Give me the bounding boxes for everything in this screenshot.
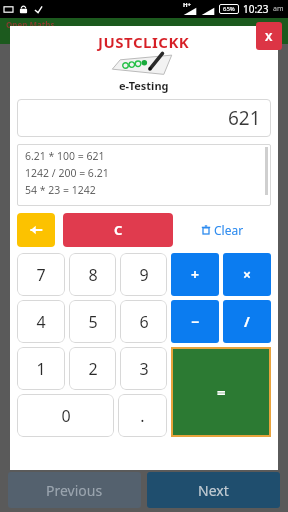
staticText: 4 xyxy=(36,311,46,333)
button[interactable]: 8 xyxy=(69,253,116,296)
button[interactable]: 2 xyxy=(69,347,116,390)
staticText: Next xyxy=(198,481,229,500)
button[interactable]: 7 xyxy=(17,253,65,296)
button[interactable]: 4 xyxy=(17,300,65,343)
button[interactable]: . xyxy=(118,394,167,437)
button[interactable]: 3 xyxy=(120,347,167,390)
staticText: 3 xyxy=(139,358,149,380)
staticText: 2 xyxy=(88,358,98,380)
staticText: 10:23 xyxy=(243,2,269,16)
staticText: × xyxy=(243,265,252,284)
staticText: 621 xyxy=(228,105,261,131)
button[interactable]: 1 xyxy=(17,347,65,390)
staticText: 0 xyxy=(61,405,71,427)
button[interactable]: 9 xyxy=(120,253,167,296)
button[interactable]: 621 xyxy=(17,99,271,137)
staticText: Open Maths xyxy=(6,19,55,30)
staticText: = xyxy=(217,382,226,402)
staticText: 9 xyxy=(139,264,149,286)
staticText: − xyxy=(191,312,200,331)
button[interactable]: Equals xyxy=(173,349,269,435)
staticText: 65% xyxy=(223,5,235,13)
button[interactable]: Backspace xyxy=(17,213,55,247)
staticText: 6 xyxy=(139,311,149,333)
button[interactable]: Clear xyxy=(174,213,271,247)
staticText: 7 xyxy=(36,264,46,286)
staticText: 5 xyxy=(88,311,98,333)
button[interactable]: 0 xyxy=(17,394,114,437)
staticText: . xyxy=(140,405,145,427)
staticText: Previous xyxy=(46,481,103,500)
button[interactable]: × xyxy=(223,253,271,296)
staticText: e-Testing xyxy=(119,78,169,93)
staticText: 54 * 23 = 1242 xyxy=(25,183,96,197)
staticText: H+ xyxy=(183,1,192,9)
button[interactable]: − xyxy=(171,300,219,343)
button[interactable]: / xyxy=(223,300,271,343)
staticText: X xyxy=(265,29,273,44)
staticText: JUSTCLICKK xyxy=(98,32,190,52)
button[interactable]: Previous xyxy=(8,472,141,508)
staticText: + xyxy=(191,265,200,284)
button[interactable]: C xyxy=(63,213,173,247)
button[interactable]: + xyxy=(171,253,219,296)
staticText: 1 xyxy=(36,358,46,380)
staticText: am xyxy=(273,4,284,14)
button[interactable]: 6 xyxy=(120,300,167,343)
staticText: C xyxy=(114,221,123,239)
staticText: / xyxy=(244,312,250,331)
staticText: 1242 / 200 = 6.21 xyxy=(25,166,109,180)
button[interactable]: Close xyxy=(256,22,282,50)
staticText: 6.21 * 100 = 621 xyxy=(25,149,105,163)
staticText: 8 xyxy=(88,264,98,286)
button[interactable]: 5 xyxy=(69,300,116,343)
staticText: Clear xyxy=(214,222,244,238)
button[interactable]: Next xyxy=(147,472,280,508)
